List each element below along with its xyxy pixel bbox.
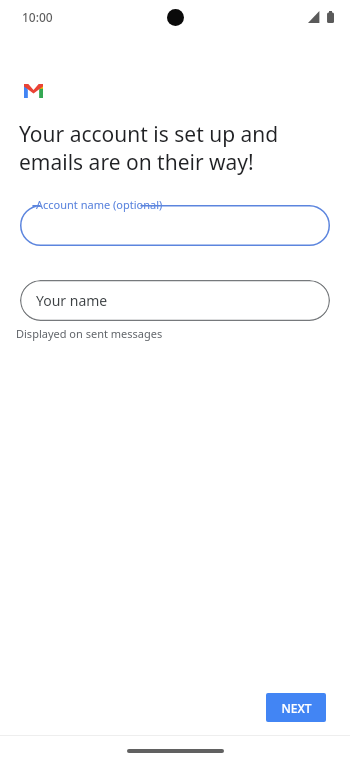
staticText: NEXT	[281, 700, 312, 716]
staticText: Your account is set up and emails are on…	[19, 120, 334, 176]
button[interactable]: Account name (optional)	[20, 194, 330, 246]
staticText: Your name	[36, 291, 108, 310]
staticText: Account name (optional)	[36, 197, 163, 212]
button[interactable]: NEXT	[266, 693, 326, 722]
staticText: Displayed on sent messages	[16, 326, 163, 341]
button[interactable]: Your name	[20, 280, 330, 321]
other: Home gesture	[127, 749, 224, 753]
staticText: 10:00	[22, 9, 53, 25]
